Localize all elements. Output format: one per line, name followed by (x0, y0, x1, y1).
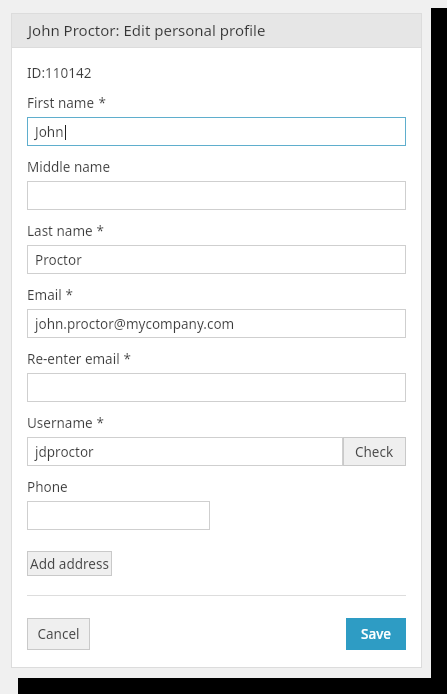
staticText: john.proctor@mycompany.com (35, 315, 235, 333)
staticText: * (95, 94, 106, 112)
staticText: John Proctor: Edit personal profile (28, 20, 266, 40)
staticText: Phone (27, 478, 68, 496)
button[interactable]: Check (343, 437, 406, 466)
button[interactable] (27, 181, 406, 210)
staticText: Proctor (35, 251, 82, 269)
button[interactable]: Cancel (27, 618, 90, 650)
staticText: * (120, 350, 131, 368)
button[interactable]: jdproctor (27, 437, 343, 466)
staticText: First name (27, 94, 95, 112)
button[interactable]: Add address (27, 551, 112, 576)
staticText: Re-enter email (27, 350, 120, 368)
staticText: Add address (30, 555, 109, 573)
staticText: * (93, 414, 104, 432)
staticText: Middle name (27, 158, 111, 176)
staticText: Last name (27, 222, 93, 240)
button[interactable]: Save (346, 618, 406, 650)
button[interactable]: John (27, 117, 406, 146)
button[interactable] (27, 501, 210, 530)
staticText: Check (355, 443, 394, 461)
button[interactable] (27, 373, 406, 402)
staticText: Cancel (37, 625, 80, 643)
button[interactable]: Proctor (27, 245, 406, 274)
button[interactable]: john.proctor@mycompany.com (27, 309, 406, 338)
staticText: * (62, 286, 73, 304)
staticText: ID:110142 (27, 64, 92, 82)
staticText: * (93, 222, 104, 240)
staticText: Username (27, 414, 93, 432)
staticText: John (35, 123, 64, 141)
staticText: Save (361, 625, 392, 643)
staticText: Email (27, 286, 62, 304)
staticText: jdproctor (35, 443, 94, 461)
